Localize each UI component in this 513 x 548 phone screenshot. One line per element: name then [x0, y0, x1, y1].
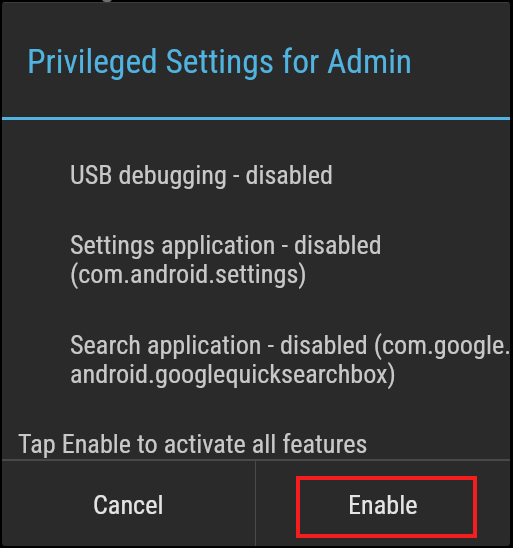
- staticText: Tap Enable to activate all features: [18, 429, 368, 460]
- button[interactable]: Enable: [256, 461, 510, 546]
- button[interactable]: Cancel: [2, 461, 255, 546]
- staticText: Search application - disabled (com.googl…: [70, 330, 510, 389]
- staticText: Settings application - disabled (com.and…: [70, 230, 382, 289]
- staticText: Cancel: [93, 490, 164, 521]
- staticText: Enable: [348, 490, 418, 521]
- staticText: USB debugging - disabled: [70, 160, 334, 191]
- staticText: Privileged Settings for Admin: [27, 42, 413, 81]
